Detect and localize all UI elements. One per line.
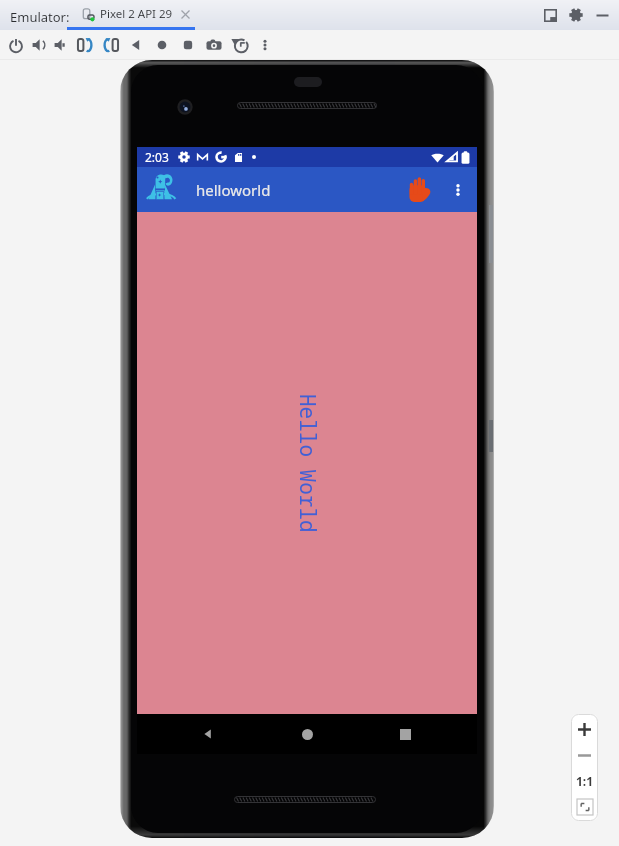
staticText: 1:1: [576, 773, 594, 789]
button[interactable]: Overview: [177, 30, 199, 59]
other: Close tab: [181, 10, 190, 19]
button[interactable]: Rotate right: [100, 30, 122, 59]
button[interactable]: Zoom in: [571, 716, 598, 742]
button[interactable]: Back: [188, 714, 228, 754]
staticText: Hello World: [293, 394, 322, 533]
button[interactable]: Recents: [385, 714, 425, 754]
button[interactable]: Dock window: [537, 2, 563, 28]
button[interactable]: Home: [151, 30, 173, 59]
button[interactable]: Zoom out: [571, 742, 598, 768]
button[interactable]: Volume up: [28, 30, 50, 59]
button[interactable]: Actual size: [571, 768, 598, 794]
button[interactable]: Take screenshot: [203, 30, 225, 59]
button[interactable]: More: [254, 30, 276, 59]
button[interactable]: More options: [438, 167, 478, 212]
staticText: Pixel 2 API 29: [100, 6, 173, 22]
button[interactable]: Stop: [399, 167, 441, 212]
button[interactable]: Pixel 2 API 29: [67, 0, 195, 28]
button[interactable]: Rotate left: [74, 30, 96, 59]
button[interactable]: Power: [5, 30, 27, 59]
button[interactable]: Settings: [563, 2, 589, 28]
button[interactable]: App icon: [141, 167, 181, 212]
button[interactable]: Home: [287, 714, 327, 754]
staticText: helloworld: [196, 180, 271, 200]
staticText: Emulator:: [10, 8, 70, 26]
button[interactable]: Volume down: [50, 30, 72, 59]
staticText: 2:03: [145, 149, 169, 165]
button[interactable]: History: [229, 30, 251, 59]
button[interactable]: Back: [125, 30, 147, 59]
button[interactable]: Minimize: [589, 2, 615, 28]
button[interactable]: Fit to screen: [571, 794, 598, 819]
